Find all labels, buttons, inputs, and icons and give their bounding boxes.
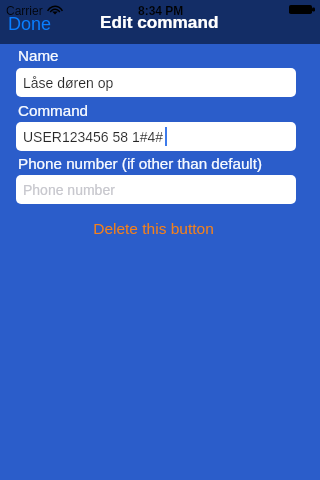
staticText: Name	[18, 47, 59, 64]
staticText: Phone number	[23, 182, 115, 198]
button[interactable]: USER123456 58 1#4#	[16, 122, 296, 151]
button[interactable]: Låse døren op	[16, 68, 296, 97]
other: Wi-Fi signal	[48, 4, 62, 15]
staticText: USER123456 58 1#4#	[23, 129, 164, 145]
staticText: 8:34 PM	[138, 4, 184, 17]
staticText: Done	[8, 14, 52, 34]
staticText: Command	[18, 102, 89, 119]
button[interactable]: Delete this button	[13, 217, 293, 239]
other: Battery full	[289, 5, 315, 14]
button[interactable]: Done	[0, 14, 62, 43]
staticText: Delete this button	[93, 220, 214, 237]
button[interactable]: Phone number	[16, 175, 296, 204]
staticText: Edit command	[100, 12, 219, 31]
staticText: Phone number (if other than default)	[18, 155, 262, 172]
staticText: Carrier	[6, 4, 43, 17]
staticText: Låse døren op	[23, 75, 114, 91]
